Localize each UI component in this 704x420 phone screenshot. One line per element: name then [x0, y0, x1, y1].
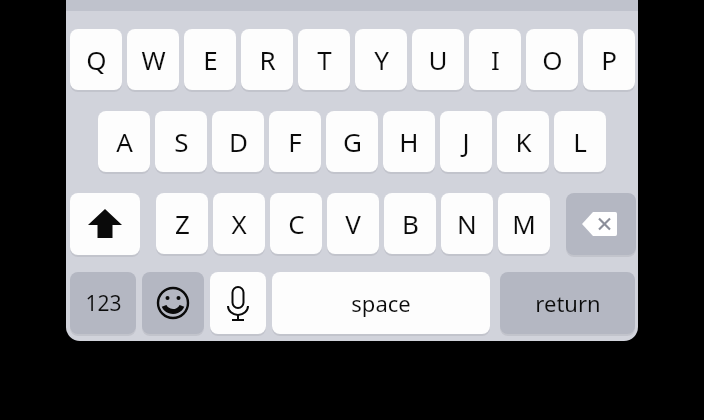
staticText: C: [288, 206, 305, 241]
button[interactable]: D: [212, 111, 264, 172]
staticText: F: [288, 124, 302, 159]
staticText: H: [399, 124, 419, 159]
staticText: T: [317, 42, 332, 77]
button[interactable]: Y: [355, 29, 407, 90]
staticText: S: [174, 124, 189, 159]
button[interactable]: Shift: [70, 193, 140, 255]
button[interactable]: K: [497, 111, 549, 172]
staticText: Y: [374, 42, 389, 77]
button[interactable]: G: [326, 111, 378, 172]
button[interactable]: L: [554, 111, 606, 172]
button[interactable]: space: [272, 272, 490, 334]
button[interactable]: J: [440, 111, 492, 172]
staticText: I: [491, 42, 500, 77]
button[interactable]: A: [98, 111, 150, 172]
button[interactable]: M: [498, 193, 550, 254]
button[interactable]: I: [469, 29, 521, 90]
staticText: return: [535, 288, 601, 318]
staticText: J: [462, 124, 470, 159]
staticText: M: [512, 206, 536, 241]
button[interactable]: Dictate: [210, 272, 266, 334]
button[interactable]: P: [583, 29, 635, 90]
staticText: N: [457, 206, 477, 241]
staticText: R: [259, 42, 276, 77]
button[interactable]: S: [155, 111, 207, 172]
button[interactable]: C: [270, 193, 322, 254]
staticText: W: [141, 42, 166, 77]
staticText: U: [428, 42, 448, 77]
button[interactable]: return: [500, 272, 635, 334]
staticText: G: [343, 124, 362, 159]
button[interactable]: X: [213, 193, 265, 254]
button[interactable]: Emoji: [142, 272, 204, 334]
staticText: A: [116, 124, 133, 159]
staticText: L: [573, 124, 587, 159]
staticText: B: [402, 206, 419, 241]
staticText: P: [601, 42, 617, 77]
button[interactable]: O: [526, 29, 578, 90]
button[interactable]: H: [383, 111, 435, 172]
staticText: K: [515, 124, 532, 159]
button[interactable]: T: [298, 29, 350, 90]
button[interactable]: U: [412, 29, 464, 90]
button[interactable]: N: [441, 193, 493, 254]
staticText: 123: [85, 289, 122, 318]
staticText: E: [203, 42, 218, 77]
button[interactable]: W: [127, 29, 179, 90]
button[interactable]: F: [269, 111, 321, 172]
button[interactable]: Q: [70, 29, 122, 90]
button[interactable]: R: [241, 29, 293, 90]
button[interactable]: V: [327, 193, 379, 254]
button[interactable]: B: [384, 193, 436, 254]
button[interactable]: 123: [70, 272, 136, 334]
staticText: O: [542, 42, 563, 77]
staticText: X: [231, 206, 247, 241]
staticText: Z: [175, 206, 190, 241]
staticText: V: [345, 206, 361, 241]
button[interactable]: E: [184, 29, 236, 90]
staticText: Q: [86, 42, 107, 77]
staticText: space: [351, 288, 411, 318]
button[interactable]: Backspace: [566, 193, 636, 255]
button[interactable]: Z: [156, 193, 208, 254]
staticText: D: [229, 124, 248, 159]
